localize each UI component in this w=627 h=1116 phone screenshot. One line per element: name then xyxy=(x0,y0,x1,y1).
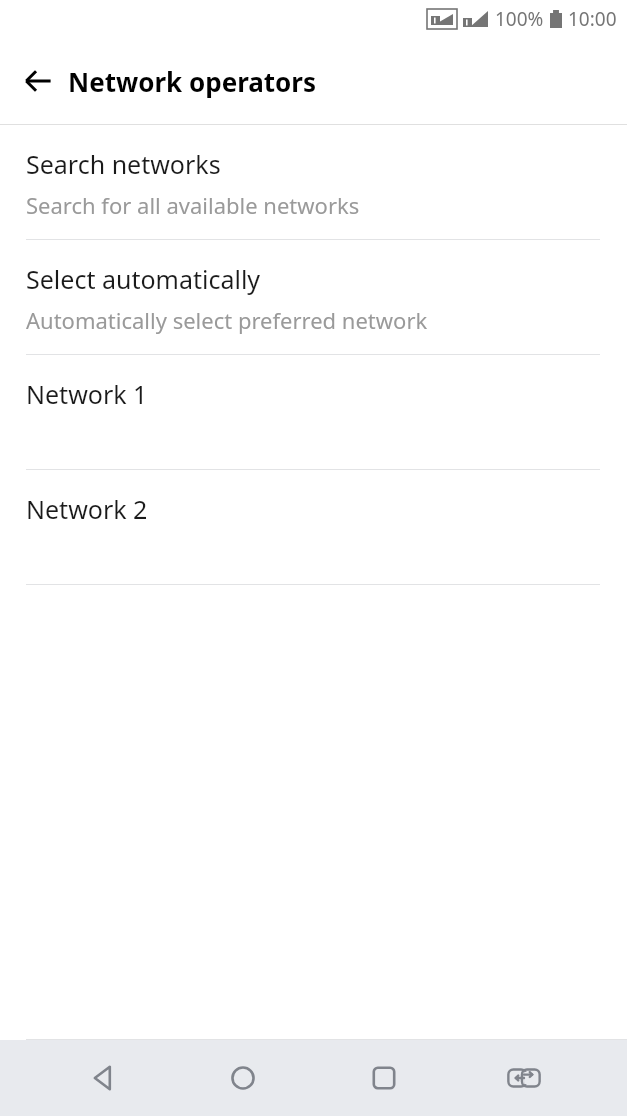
button[interactable]: Search networks xyxy=(0,125,627,239)
staticText: Search networks xyxy=(26,147,221,181)
button[interactable]: Back xyxy=(65,1040,141,1116)
staticText: Network 2 xyxy=(26,492,148,526)
button[interactable]: Dual window xyxy=(486,1040,562,1116)
staticText: Select automatically xyxy=(26,262,261,296)
staticText: Search for all available networks xyxy=(26,190,360,220)
staticText: 100% xyxy=(495,6,544,32)
button[interactable]: Back xyxy=(14,57,62,105)
button[interactable]: Home xyxy=(205,1040,281,1116)
staticText: Network 1 xyxy=(26,377,148,411)
button[interactable]: Recents xyxy=(346,1040,422,1116)
button[interactable]: Select automatically xyxy=(0,240,627,354)
staticText: Automatically select preferred network xyxy=(26,305,428,335)
staticText: 10:00 xyxy=(568,6,617,32)
button[interactable]: Network 1 xyxy=(0,355,627,469)
staticText: Network operators xyxy=(68,64,317,99)
button[interactable]: Network 2 xyxy=(0,470,627,584)
